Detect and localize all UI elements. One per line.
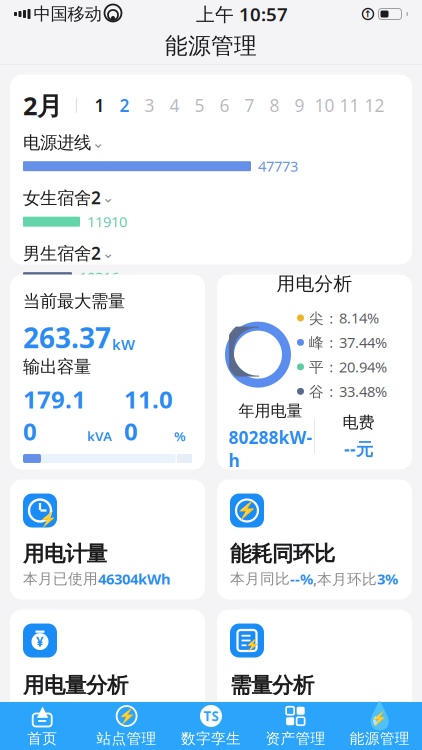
button[interactable]: 电源进线 bbox=[23, 132, 103, 153]
staticText: 输出容量 bbox=[23, 356, 91, 377]
button[interactable]: 9 bbox=[287, 94, 312, 116]
staticText: 峰：37.44% bbox=[309, 333, 387, 352]
staticText: 179.10 bbox=[23, 383, 86, 447]
button[interactable]: 4 bbox=[162, 94, 187, 116]
staticText: 本月同比 bbox=[230, 570, 290, 588]
staticText: 10316 bbox=[79, 267, 119, 287]
staticText: 上午 10:57 bbox=[196, 2, 288, 26]
staticText: 4 bbox=[169, 94, 179, 117]
button[interactable]: 男生宿舍2 bbox=[23, 241, 113, 264]
button[interactable]: ⚡ bbox=[10, 479, 205, 599]
staticText: ⌄ bbox=[102, 189, 114, 206]
staticText: 本月已使用 bbox=[23, 570, 98, 588]
button[interactable]: 10 bbox=[312, 94, 337, 116]
staticText: ⌄ bbox=[102, 245, 114, 261]
button[interactable]: 女生宿舍2 bbox=[23, 186, 113, 209]
button[interactable]: 5 bbox=[187, 94, 212, 116]
button[interactable]: ⚡ bbox=[217, 479, 412, 599]
staticText: 5 bbox=[194, 94, 204, 117]
staticText: 年用电量 bbox=[238, 401, 302, 421]
staticText: 6 bbox=[219, 94, 229, 117]
button[interactable]: 12 bbox=[362, 94, 387, 116]
button[interactable]: 1 bbox=[87, 94, 112, 116]
staticText: 1 bbox=[94, 94, 104, 117]
staticText: 263.37 bbox=[23, 319, 111, 356]
staticText: 本月已使用 bbox=[23, 700, 98, 718]
button[interactable]: 💧 bbox=[338, 702, 422, 750]
staticText: kW bbox=[112, 334, 135, 354]
staticText: ⚡ bbox=[371, 710, 388, 726]
staticText: 数字孪生 bbox=[181, 729, 241, 747]
staticText: 2月 bbox=[23, 88, 62, 122]
staticText: 能耗同环比 bbox=[230, 541, 335, 567]
staticText: 电源进线 bbox=[23, 132, 91, 153]
staticText: 能源管理 bbox=[165, 32, 257, 60]
staticText: 7 bbox=[244, 94, 254, 117]
button[interactable]: 7 bbox=[237, 94, 262, 116]
staticText: 2 bbox=[119, 94, 129, 117]
staticText: 💧 bbox=[363, 701, 396, 731]
staticText: 3 bbox=[144, 94, 154, 117]
staticText: ↑ bbox=[364, 9, 372, 19]
staticText: 11.00 bbox=[124, 383, 173, 447]
staticText: 8 bbox=[269, 94, 279, 117]
button[interactable]: ¥ bbox=[10, 609, 205, 729]
staticText: 用电计量 bbox=[23, 541, 107, 567]
staticText: ▲ bbox=[37, 703, 48, 719]
button[interactable]: 11 bbox=[337, 94, 362, 116]
staticText: 10 bbox=[314, 94, 334, 117]
button[interactable]: 2 bbox=[112, 94, 137, 116]
button[interactable]: ▲ bbox=[0, 702, 84, 750]
button[interactable]: 资产管理 bbox=[253, 702, 338, 750]
staticText: 尖：8.14% bbox=[309, 308, 379, 328]
staticText: % bbox=[174, 427, 186, 445]
staticText: 中国移动 bbox=[33, 3, 101, 25]
staticText: 首页 bbox=[27, 729, 57, 747]
staticText: 当前最大需量 bbox=[23, 290, 125, 312]
staticText: ¥ bbox=[36, 633, 44, 650]
staticText: 男生宿舍2 bbox=[23, 241, 101, 264]
button[interactable]: ⚡ bbox=[84, 702, 169, 750]
staticText: 平：20.94% bbox=[309, 357, 387, 377]
staticText: ⚡ bbox=[39, 510, 57, 527]
staticText: 11 bbox=[339, 94, 359, 117]
staticText: 12 bbox=[364, 94, 384, 117]
staticText: TS bbox=[203, 707, 218, 725]
staticText: ⌄ bbox=[92, 134, 104, 151]
staticText: kVA bbox=[87, 427, 112, 445]
staticText: --元 bbox=[344, 437, 373, 460]
staticText: 需量分析 bbox=[230, 672, 314, 698]
staticText: 站点管理 bbox=[97, 729, 157, 747]
staticText: 用电量分析 bbox=[23, 672, 128, 698]
button[interactable]: 6 bbox=[212, 94, 237, 116]
staticText: ⚡ bbox=[236, 501, 258, 520]
staticText: 9 bbox=[294, 94, 304, 117]
button[interactable]: ⚡ bbox=[217, 609, 412, 729]
staticText: 电费 bbox=[342, 413, 374, 432]
staticText: 资产管理 bbox=[265, 729, 325, 747]
button[interactable]: TS bbox=[169, 702, 253, 750]
staticText: 46304kWh bbox=[98, 569, 171, 588]
staticText: --% bbox=[290, 569, 313, 588]
staticText: ⚡ bbox=[244, 638, 259, 651]
staticText: 用电分析 bbox=[276, 272, 352, 295]
staticText: ⚡ bbox=[118, 708, 136, 724]
staticText: 47773 bbox=[258, 156, 298, 176]
button[interactable]: 3 bbox=[137, 94, 162, 116]
staticText: 女生宿舍2 bbox=[23, 186, 101, 209]
staticText: 3% bbox=[377, 569, 398, 588]
staticText: ,本月环比 bbox=[313, 569, 377, 588]
staticText: 本月最大需量 bbox=[230, 700, 320, 718]
staticText: 11910 bbox=[87, 212, 127, 231]
staticText: 谷：33.48% bbox=[309, 382, 387, 401]
staticText: 能源管理 bbox=[350, 729, 410, 747]
button[interactable]: 8 bbox=[262, 94, 287, 116]
staticText: 80288kWh bbox=[228, 426, 312, 472]
